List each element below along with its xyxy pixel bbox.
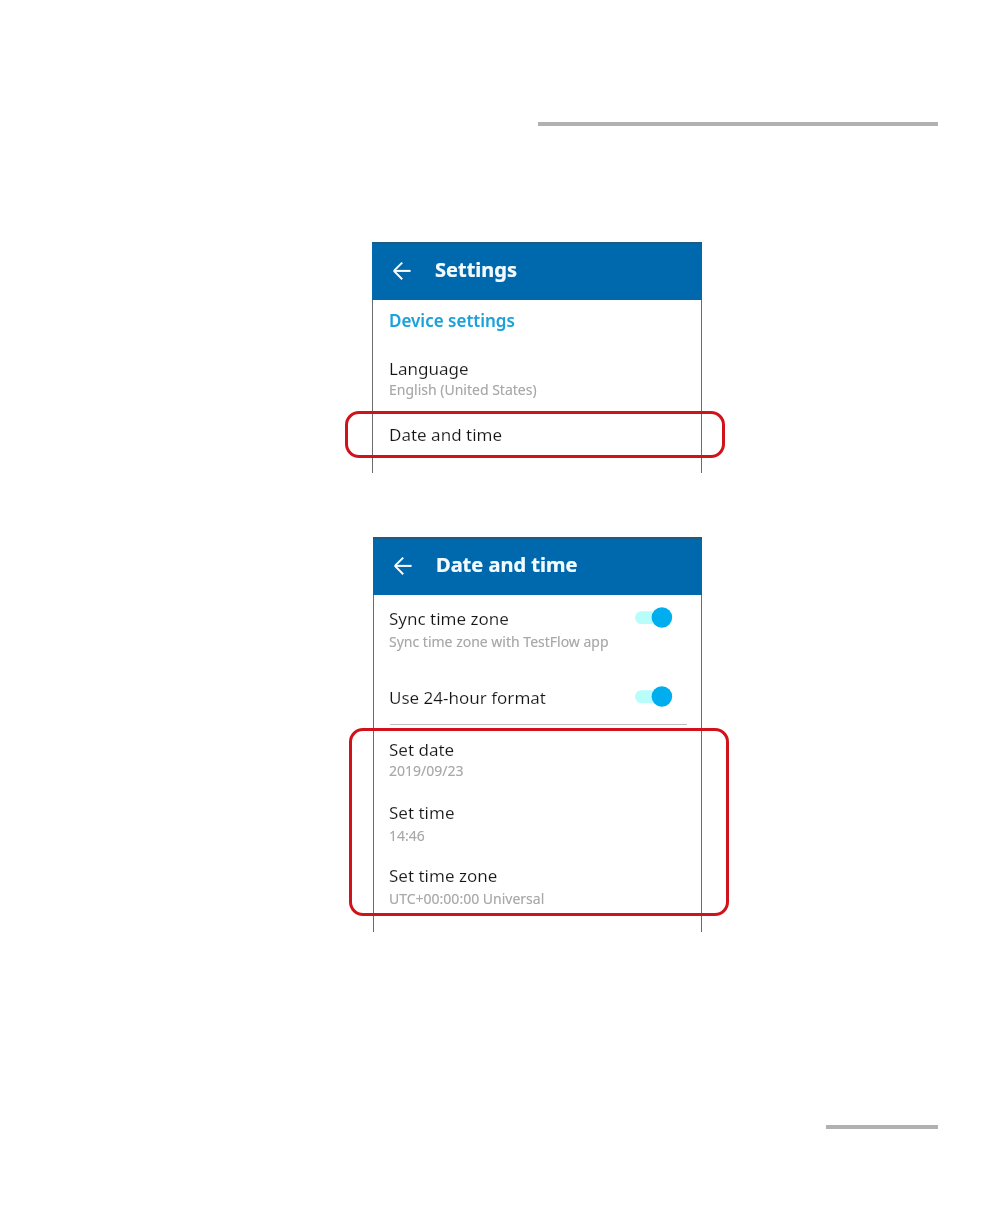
button[interactable]: Use 24-hour format xyxy=(373,668,702,714)
staticText: Language xyxy=(389,357,469,380)
staticText: Set time zone xyxy=(389,864,498,887)
button[interactable]: Sync time zone switch, on xyxy=(629,602,681,634)
button[interactable]: Set time zone xyxy=(373,856,702,914)
staticText: Use 24-hour format xyxy=(389,686,546,709)
button[interactable]: Date and time xyxy=(372,412,702,457)
staticText: Set date xyxy=(389,738,455,761)
button[interactable]: Use 24-hour format switch, on xyxy=(629,681,681,713)
staticText: Set time xyxy=(389,801,455,824)
staticText: UTC+00:00:00 Universal xyxy=(389,889,545,908)
button[interactable]: Back xyxy=(381,253,416,288)
staticText: Settings xyxy=(435,256,517,283)
staticText: 2019/09/23 xyxy=(389,761,464,780)
staticText: English (United States) xyxy=(389,380,537,399)
staticText: Date and time xyxy=(389,423,503,446)
staticText: Device settings xyxy=(389,309,515,332)
button[interactable]: Back xyxy=(382,548,417,583)
button[interactable]: Set date xyxy=(373,730,702,788)
button[interactable]: Language xyxy=(372,350,702,405)
staticText: 14:46 xyxy=(389,826,425,845)
button[interactable]: Set time xyxy=(373,793,702,851)
staticText: Sync time zone xyxy=(389,607,509,630)
staticText: Date and time xyxy=(436,551,578,578)
button[interactable]: Sync time zone xyxy=(373,600,702,656)
staticText: Sync time zone with TestFlow app xyxy=(389,632,609,651)
